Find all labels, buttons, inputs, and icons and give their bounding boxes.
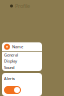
staticText: Profile xyxy=(15,2,30,10)
staticText: Display xyxy=(4,58,17,64)
staticText: Name xyxy=(12,44,23,49)
staticText: Sound xyxy=(4,65,14,70)
staticText: Alerts xyxy=(4,76,15,81)
staticText: General xyxy=(4,52,18,58)
